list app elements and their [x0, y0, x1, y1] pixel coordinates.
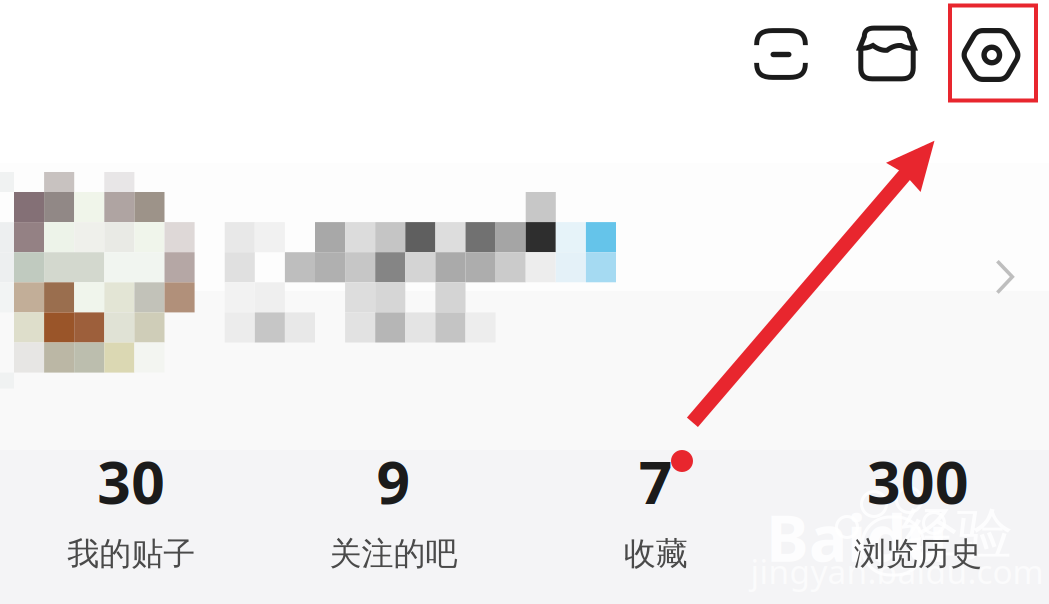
staticText: 300: [867, 442, 969, 520]
staticText: 浏览历史: [854, 534, 982, 574]
staticText: 经验: [901, 500, 1013, 568]
staticText: 收藏: [624, 534, 688, 574]
button[interactable]: Settings: [962, 28, 1022, 82]
button[interactable]: 9: [262, 436, 524, 574]
staticText: 关注的吧: [329, 534, 457, 574]
staticText: 7: [639, 442, 673, 520]
button[interactable]: 7: [524, 436, 787, 574]
button[interactable]: Scan: [754, 28, 808, 80]
button[interactable]: Gifts: [857, 25, 917, 82]
button[interactable]: 300: [787, 436, 1049, 574]
staticText: 我的贴子: [67, 534, 195, 574]
button[interactable]: 30: [0, 436, 262, 574]
staticText: 9: [376, 442, 410, 520]
staticText: 30: [97, 442, 165, 520]
staticText: Baidu: [766, 494, 948, 579]
staticText: jingyan.baidu.com: [750, 549, 1043, 593]
